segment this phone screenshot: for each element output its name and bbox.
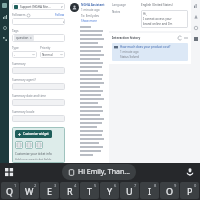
button[interactable]: Refresh [178, 36, 182, 40]
staticText: 4 [74, 183, 77, 188]
staticText: Summary date and time [12, 94, 46, 98]
button[interactable]: 9 [160, 182, 179, 199]
staticText: v [61, 5, 63, 9]
staticText: v [63, 20, 65, 24]
button[interactable] [12, 115, 65, 122]
staticText: How much does your product cost? [120, 45, 171, 49]
button[interactable]: 0 [180, 182, 199, 199]
button[interactable]: Settings [3, 26, 7, 30]
button[interactable]: Layout list [35, 141, 43, 149]
button[interactable]: Normal [40, 51, 65, 58]
button[interactable] [12, 83, 65, 90]
staticText: 1 minute ago [120, 50, 139, 54]
staticText: Summary agent? [12, 78, 36, 82]
staticText: 7 [134, 183, 137, 188]
staticText: Priority [40, 46, 51, 50]
button[interactable]: Follow [55, 13, 65, 17]
staticText: Hi Emily, Than... [78, 167, 130, 177]
button[interactable]: Layout one column [15, 141, 23, 149]
staticText: Type [12, 46, 19, 50]
staticText: NGHA Assistant [81, 3, 105, 7]
staticText: Followers [12, 13, 26, 17]
button[interactable]: Home [2, 3, 7, 8]
button[interactable]: Apps [3, 37, 7, 41]
staticText: Follow [55, 13, 65, 17]
staticText: O [166, 185, 174, 197]
button[interactable]: 3 [40, 182, 59, 199]
staticText: To: Emily.dev [81, 14, 100, 18]
button[interactable]: - [12, 51, 37, 58]
staticText: Notes [112, 10, 121, 14]
staticText: Normal [42, 53, 53, 57]
button[interactable]: Collapse [184, 36, 188, 40]
button[interactable]: 8 [140, 182, 159, 199]
staticText: Show more [81, 19, 97, 23]
button[interactable]: Voice input [185, 167, 195, 177]
staticText: 1 [14, 183, 17, 188]
staticText: I [148, 185, 152, 197]
staticText: question [16, 36, 29, 40]
button[interactable]: Hi, [141, 10, 188, 28]
staticText: U [126, 185, 133, 197]
staticText: 3 [54, 183, 57, 188]
staticText: Summary [12, 62, 26, 66]
staticText: Hi, [143, 12, 147, 16]
staticText: Q [6, 185, 14, 197]
button[interactable]: 4 [60, 182, 79, 199]
staticText: 8 [154, 183, 157, 188]
staticText: brand online and I'm [143, 22, 173, 26]
staticText: R [67, 185, 73, 197]
button[interactable]: Keyboard options [5, 168, 14, 177]
button[interactable]: v [12, 18, 65, 25]
staticText: I cannot access your [143, 17, 172, 21]
staticText: 9 [174, 183, 177, 188]
button[interactable]: Support (NGHA Site... [12, 3, 65, 10]
button[interactable]: Contacts [194, 15, 198, 19]
button[interactable]: Customize widget [15, 130, 52, 138]
staticText: Summary locale [12, 110, 35, 114]
staticText: Y [107, 185, 113, 197]
staticText: W [25, 185, 34, 197]
staticText: x [30, 36, 32, 40]
button[interactable]: Reports [3, 15, 7, 19]
staticText: Add your own ticket fields [15, 158, 52, 160]
staticText: 5 [94, 183, 97, 188]
staticText: Language [112, 3, 127, 7]
staticText: Support (NGHA Site... [20, 5, 51, 9]
button[interactable]: question [12, 34, 65, 42]
button[interactable]: How much does your product cost? [112, 43, 188, 61]
staticText: Customize your ticket info [15, 152, 52, 156]
staticText: - [14, 53, 15, 57]
staticText: English (United States) [141, 3, 173, 7]
button[interactable]: Layout two columns [25, 141, 33, 149]
staticText: 6 [114, 183, 117, 188]
button[interactable] [12, 99, 65, 106]
staticText: 2 [34, 183, 37, 188]
button[interactable]: 5 [80, 182, 99, 199]
staticText: 1 minute ago [81, 8, 100, 12]
button[interactable]: 2 [20, 182, 39, 199]
button[interactable]: 1 [1, 182, 19, 199]
staticText: Tags [12, 29, 19, 33]
staticText: 0 [194, 183, 197, 188]
button[interactable]: Chart [194, 4, 198, 8]
staticText: E [47, 185, 53, 197]
staticText: P [187, 185, 193, 197]
staticText: T [87, 185, 93, 197]
button[interactable]: Help [194, 26, 198, 30]
button[interactable] [12, 67, 65, 74]
staticText: Customize widget [23, 132, 49, 136]
staticText: Interaction history [112, 36, 141, 40]
button[interactable]: 6 [100, 182, 119, 199]
staticText: Status Solved [120, 55, 139, 59]
button[interactable]: Show more [81, 19, 97, 23]
button[interactable]: 7 [120, 182, 139, 199]
button[interactable]: Hi Emily, Than... [62, 164, 136, 180]
